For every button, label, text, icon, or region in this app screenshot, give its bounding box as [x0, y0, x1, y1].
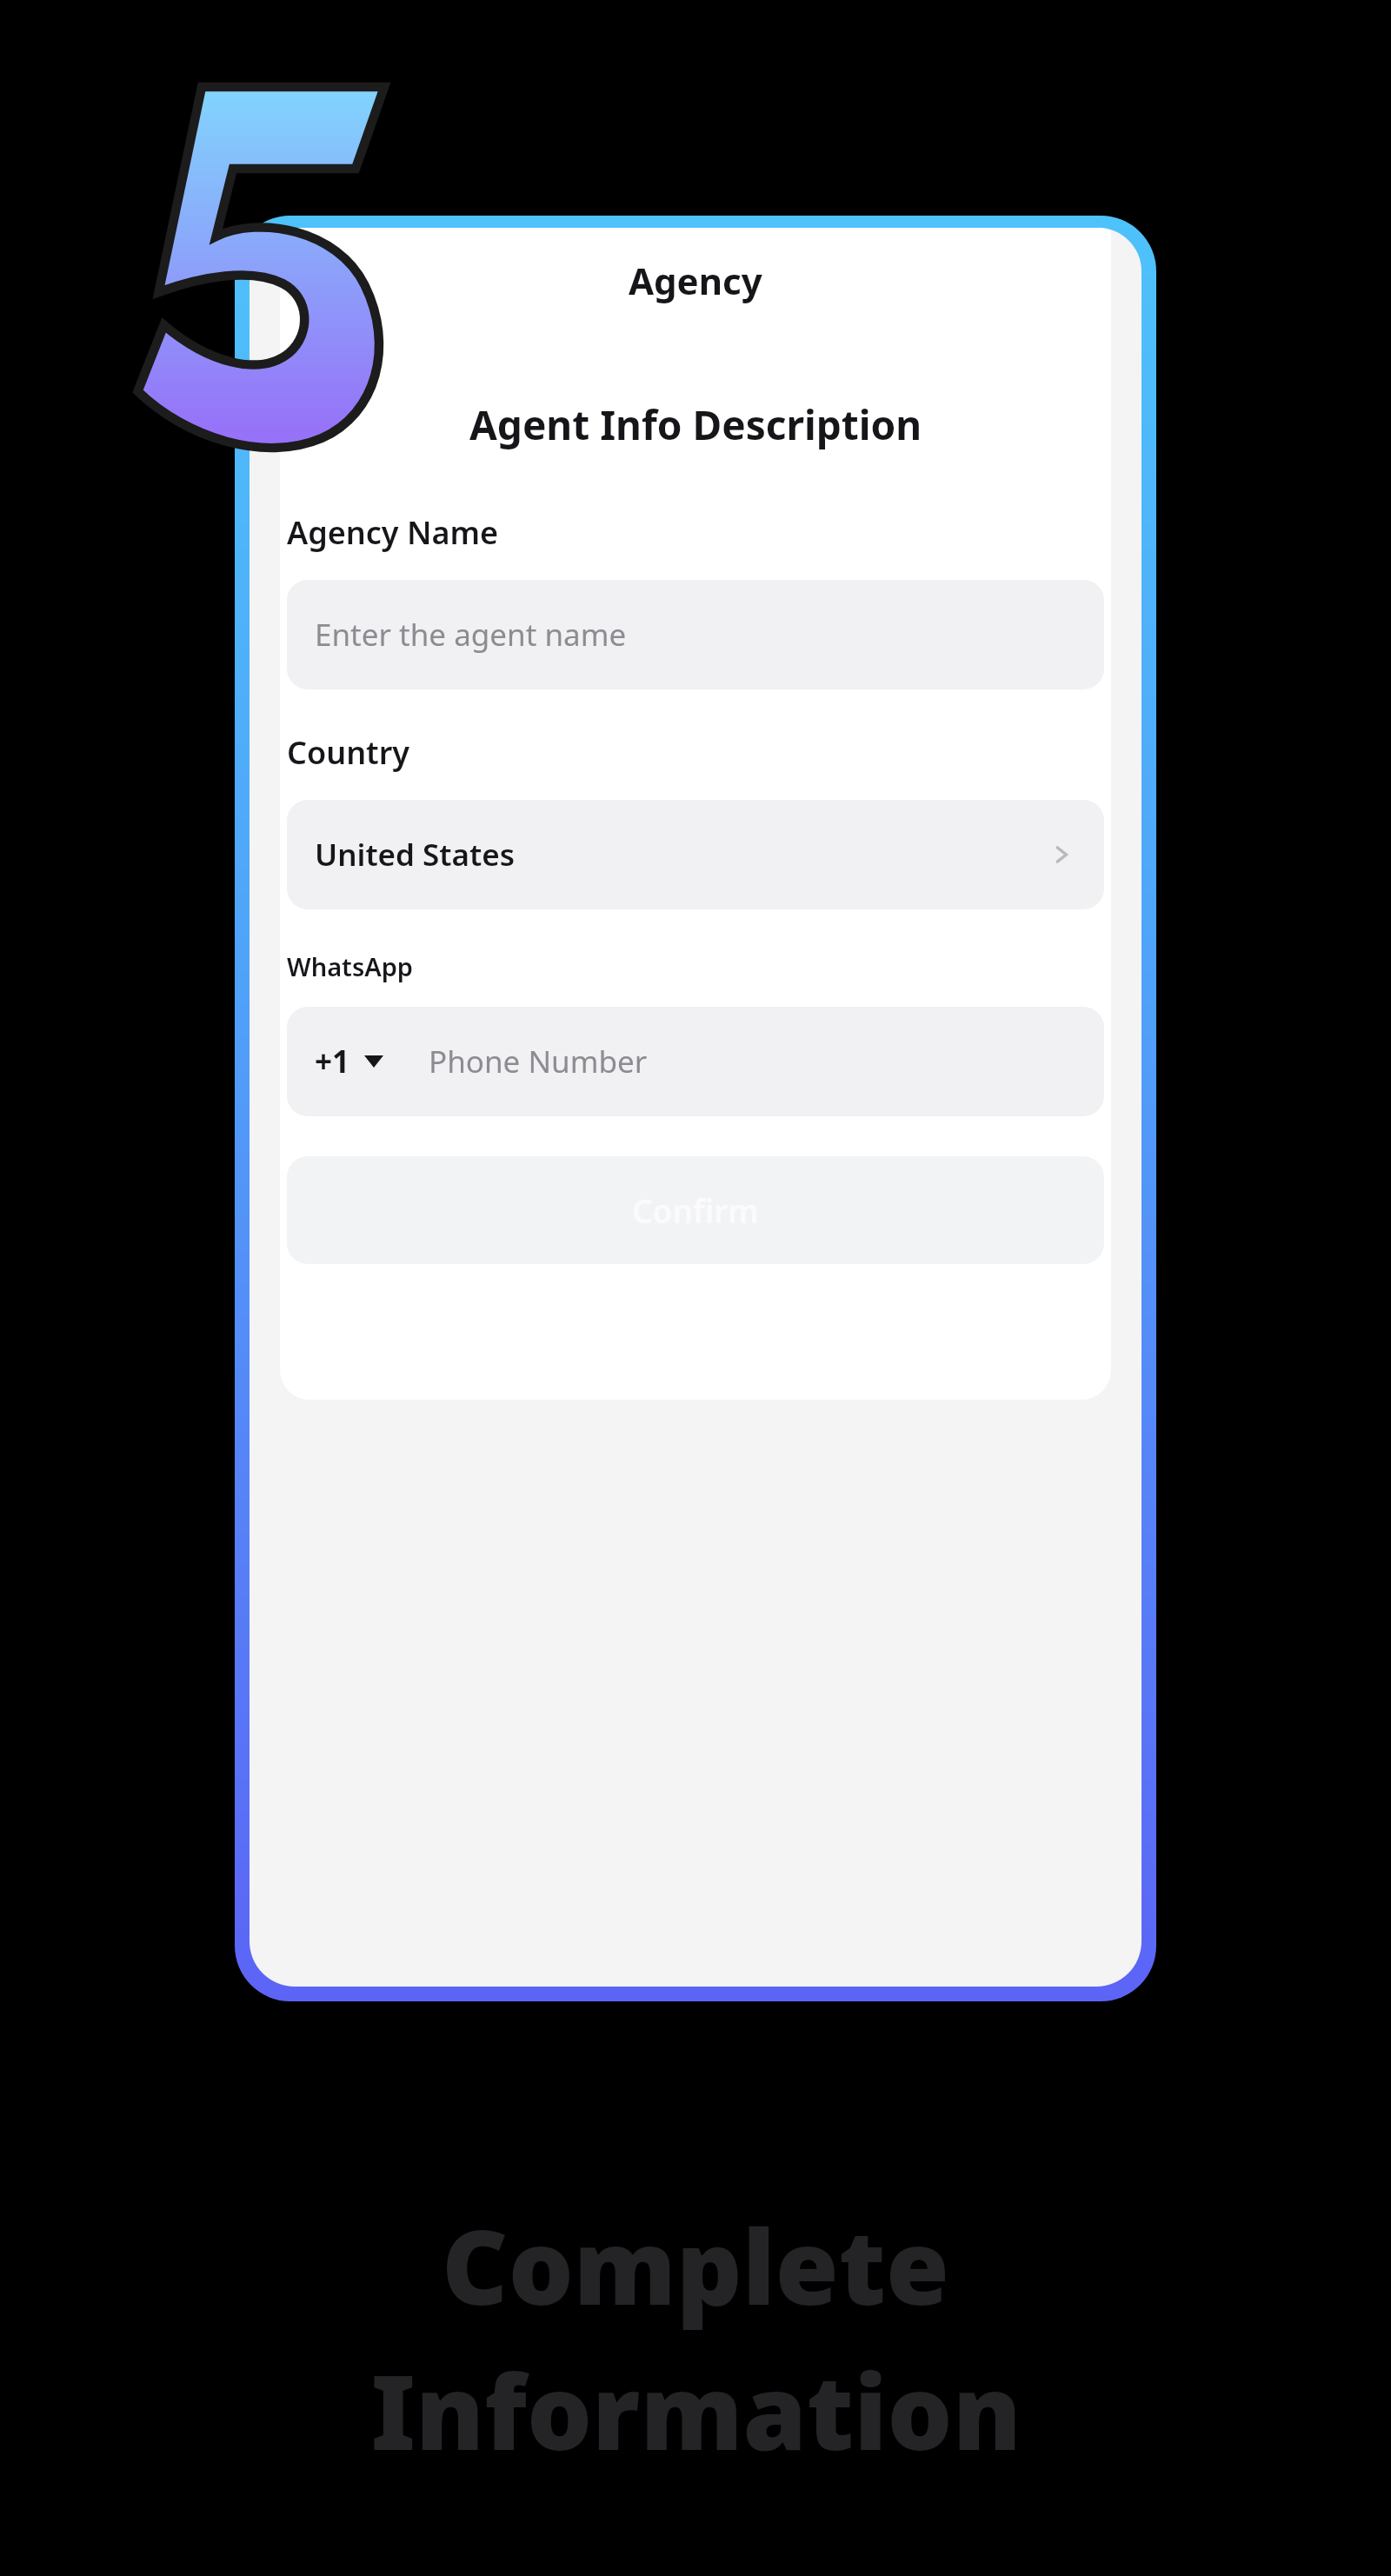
staticText: Country [287, 731, 410, 774]
staticText: Confirm [632, 1188, 759, 1232]
staticText: Agent Info Description [469, 397, 922, 452]
staticText: Phone Number [429, 1041, 648, 1082]
staticText: Complete [442, 2195, 949, 2335]
staticText: Agency Name [287, 511, 499, 554]
staticText: Enter the agent name [315, 614, 627, 656]
staticText: Agency [629, 256, 762, 305]
staticText: Information [370, 2340, 1022, 2480]
button[interactable]: United States [287, 800, 1104, 909]
other: Select country [1047, 840, 1076, 869]
staticText: WhatsApp [287, 949, 413, 983]
staticText: United States [315, 834, 515, 875]
staticText: +1 [315, 1041, 350, 1082]
other: Country code [364, 1055, 383, 1068]
